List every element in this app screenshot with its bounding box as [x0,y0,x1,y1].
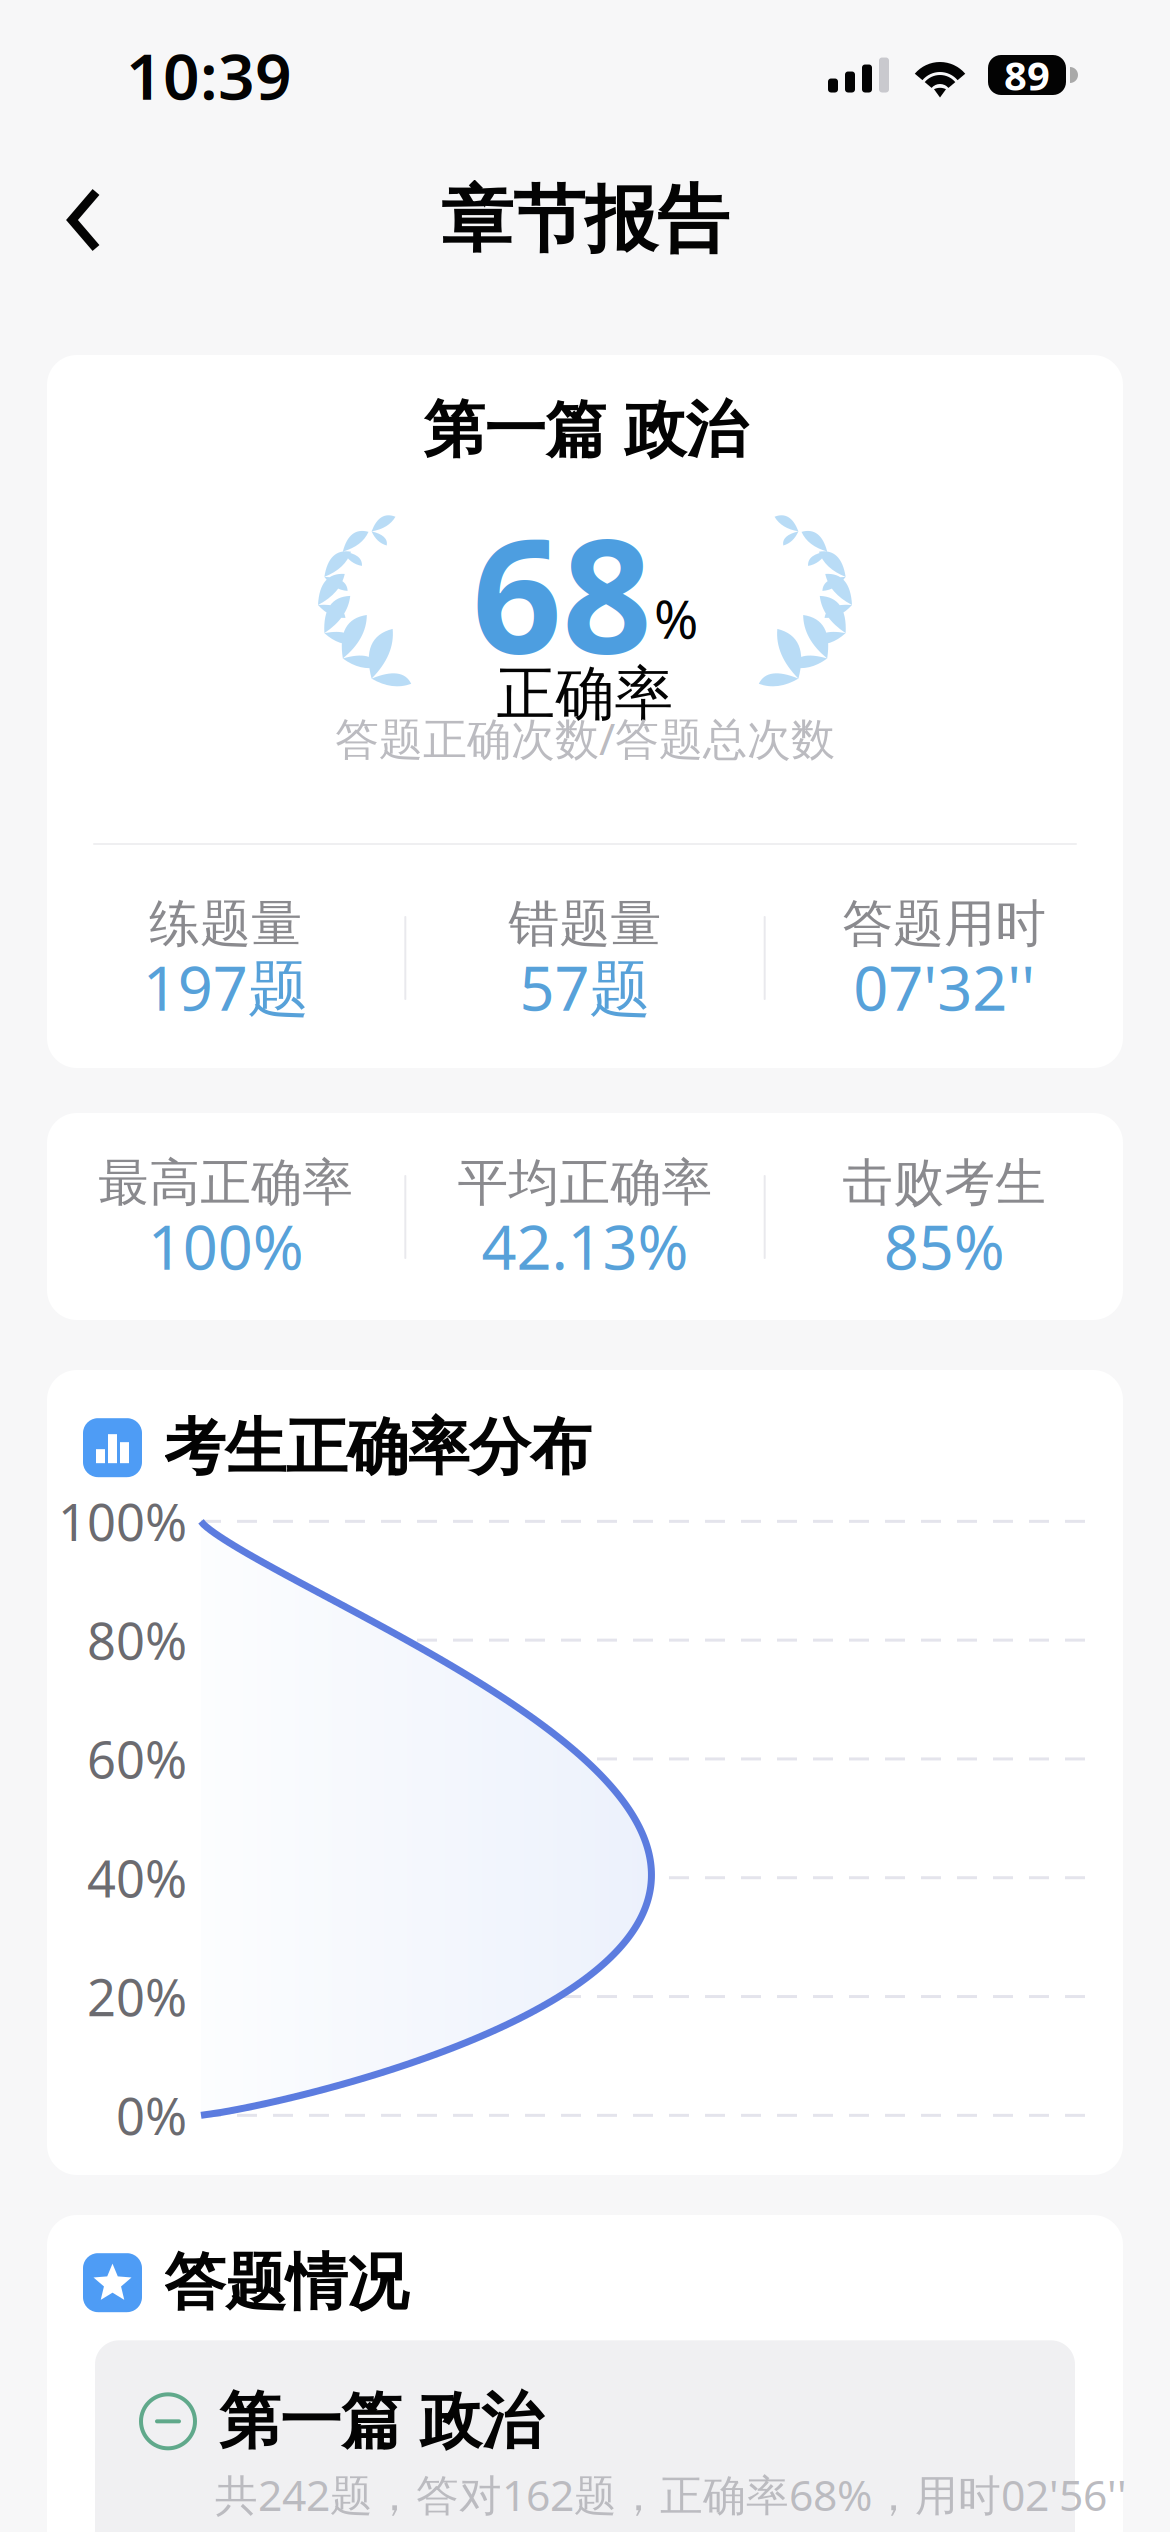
staticText: 答题情况 [164,2245,408,2320]
staticText: 42.13% [481,1205,688,1287]
staticText: 89 [1004,48,1050,101]
staticText: 第一篇 政治 [423,392,746,468]
staticText: 100% [148,1205,304,1287]
staticText: 80% [87,1606,187,1674]
staticText: 考生正确率分布 [164,1410,591,1485]
staticText: 40% [87,1844,187,1911]
staticText: 60% [87,1725,187,1793]
staticText: 68 [472,487,652,696]
staticText: 正确率 [496,658,673,730]
staticText: 20% [87,1963,187,2030]
staticText: 85% [884,1205,1005,1287]
staticText: % [654,583,698,653]
staticText: 最高正确率 [98,1152,353,1214]
staticText: 练题量 [149,893,302,955]
button[interactable]: Back [0,157,146,283]
button[interactable]: 第一篇 政治 [95,2340,1075,2532]
staticText: 57题 [519,946,650,1028]
staticText: 10:39 [126,32,292,117]
staticText: 197题 [143,946,309,1028]
staticText: 击败考生 [842,1152,1046,1214]
staticText: 章节报告 [441,176,729,264]
staticText: 0% [116,2082,187,2149]
staticText: 100% [58,1488,187,1555]
staticText: 答题用时 [842,893,1046,955]
staticText: 错题量 [508,893,661,955]
staticText: 答题正确次数/答题总次数 [335,709,835,767]
staticText: 第一篇 政治 [219,2384,542,2459]
staticText: 共242题，答对162题，正确率68%，用时02'56'' [215,2466,1127,2523]
staticText: 07'32'' [853,946,1035,1028]
staticText: 平均正确率 [457,1152,712,1214]
